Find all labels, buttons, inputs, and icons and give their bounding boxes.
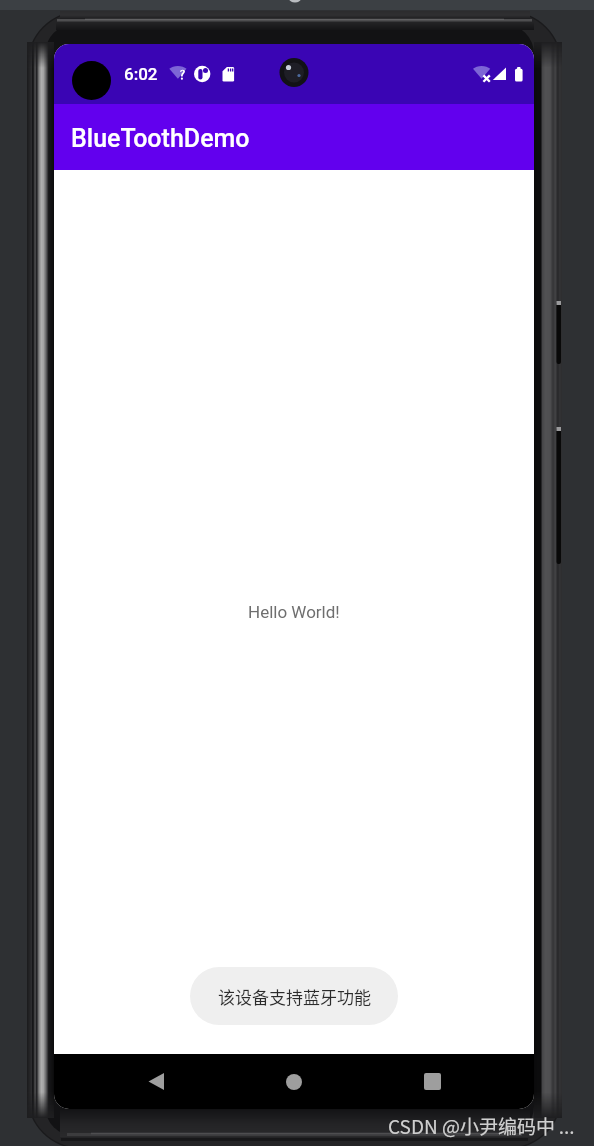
button[interactable]: Home [244, 1054, 344, 1109]
staticText: 该设备支持蓝牙功能 [218, 984, 371, 1009]
button[interactable]: Back [106, 1054, 206, 1109]
staticText: BlueToothDemo [71, 124, 250, 153]
staticText: Hello World! [248, 602, 340, 622]
staticText: CSDN @小尹编码中 ... [388, 1112, 575, 1140]
staticText: 6:02 [124, 64, 158, 84]
button[interactable]: Recent apps [382, 1054, 482, 1109]
button[interactable]: 该设备支持蓝牙功能 [190, 967, 398, 1025]
